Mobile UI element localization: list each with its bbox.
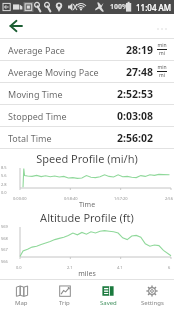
staticText: 0:00:00 (13, 196, 27, 201)
staticText: 0:58:40 (64, 196, 78, 201)
staticText: Trip (59, 299, 70, 307)
staticText: 28:19 (126, 43, 153, 57)
button[interactable]: Back (6, 16, 26, 36)
button[interactable]: Average Pace (0, 39, 174, 60)
staticText: 2:52:53 (117, 87, 153, 101)
staticText: mi (159, 72, 165, 79)
button[interactable]: Trip (43, 280, 86, 310)
staticText: 11:04 AM (136, 2, 172, 13)
staticText: Map (15, 299, 28, 307)
button[interactable]: Stopped Time (0, 105, 174, 126)
staticText: 1:57:20 (114, 196, 128, 201)
staticText: Average Pace (8, 44, 65, 56)
staticText: 100% (110, 2, 129, 12)
staticText: mi (159, 50, 165, 57)
staticText: 2.8 (1, 182, 7, 187)
staticText: 2:56:02 (117, 131, 153, 145)
staticText: Time (0, 200, 174, 210)
staticText: Moving Time (8, 88, 63, 100)
staticText: 2:56 (165, 196, 173, 201)
staticText: Stopped Time (8, 110, 67, 122)
staticText: 567 (1, 247, 8, 252)
staticText: Saved (100, 299, 117, 307)
staticText: Total Time (8, 132, 52, 144)
staticText: min (157, 64, 167, 71)
staticText: 569 (1, 224, 8, 229)
button[interactable]: Settings (130, 280, 174, 310)
staticText: 27:48 (126, 65, 153, 79)
staticText: 0.0 (1, 190, 7, 195)
staticText: 0.0 (16, 265, 22, 270)
button[interactable]: Saved (86, 280, 130, 310)
button[interactable]: Total Time (0, 127, 174, 148)
staticText: miles (0, 269, 174, 279)
staticText: Settings (141, 299, 164, 307)
staticText: Speed Profile (mi/h) (0, 151, 174, 166)
staticText: Average Moving Pace (8, 66, 99, 78)
button[interactable]: Average Moving Pace (0, 61, 174, 82)
button[interactable]: Moving Time (0, 83, 174, 104)
staticText: 4.1 (117, 265, 123, 270)
staticText: 0:03:08 (117, 109, 153, 123)
staticText: 8.5 (1, 165, 7, 170)
staticText: 6 (168, 265, 171, 270)
staticText: Altitude Profile (ft) (0, 210, 174, 225)
button[interactable]: Map (0, 280, 43, 310)
staticText: 5.6 (1, 173, 7, 178)
staticText: 2.1 (67, 265, 73, 270)
staticText: min (157, 42, 167, 49)
staticText: 568 (1, 236, 8, 241)
staticText: 566 (1, 259, 8, 264)
